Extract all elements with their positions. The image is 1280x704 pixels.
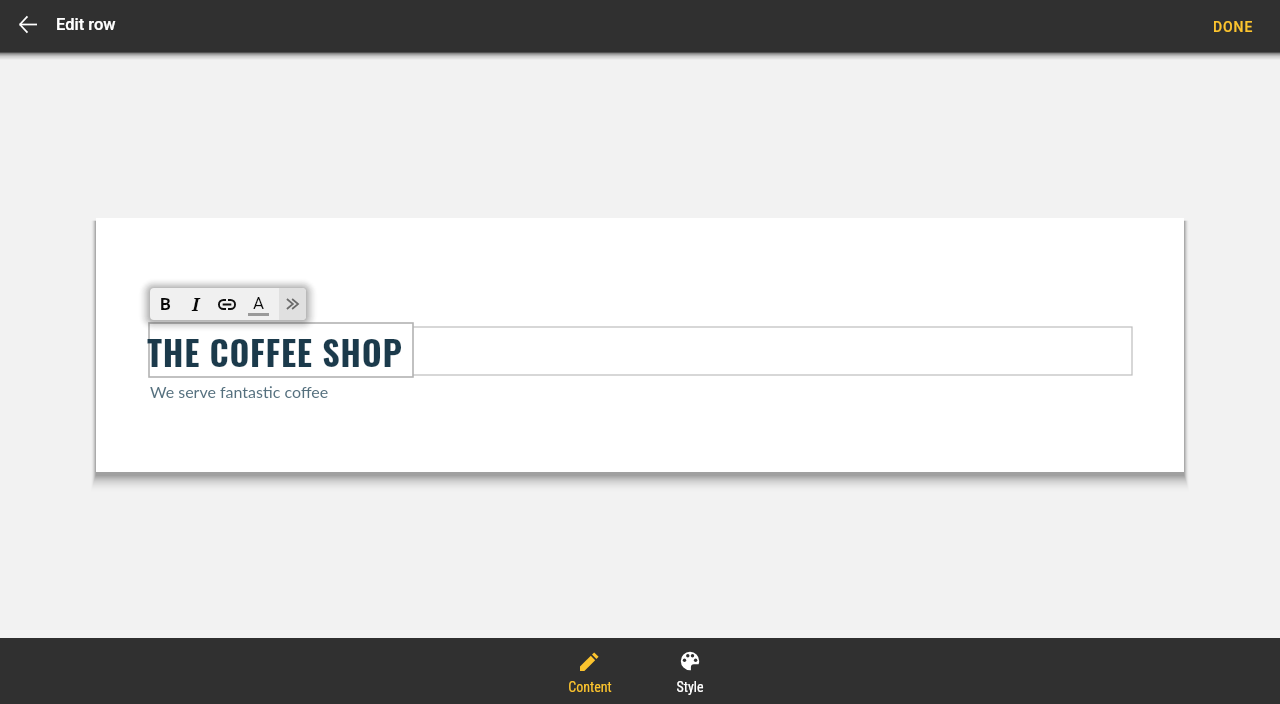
- button[interactable]: Text colour: [242, 288, 274, 320]
- staticText: A: [253, 293, 265, 313]
- staticText: B: [160, 294, 171, 314]
- button[interactable]: Insert link: [211, 288, 242, 320]
- staticText: Content: [568, 679, 612, 695]
- button[interactable]: DONE: [1199, 9, 1268, 45]
- button[interactable]: Back: [12, 8, 44, 40]
- button[interactable]: Style: [640, 638, 740, 704]
- staticText: I: [192, 292, 200, 317]
- button[interactable]: Content: [540, 638, 640, 704]
- staticText: DONE: [1213, 19, 1254, 35]
- button[interactable]: Bold: [150, 288, 180, 320]
- button[interactable]: Italic: [180, 288, 211, 320]
- staticText: THE COFFEE SHOP: [147, 326, 403, 376]
- staticText: We serve fantastic coffee: [150, 382, 329, 401]
- staticText: Style: [676, 679, 704, 695]
- button[interactable]: More formatting options: [279, 288, 306, 320]
- staticText: Edit row: [56, 15, 116, 34]
